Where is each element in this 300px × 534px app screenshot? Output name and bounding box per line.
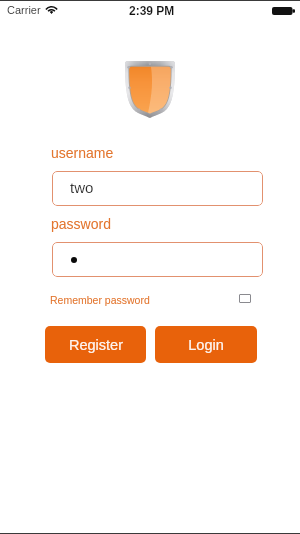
button[interactable]: Remember password checkbox xyxy=(239,294,251,303)
button[interactable]: Register xyxy=(45,326,146,363)
staticText: Carrier xyxy=(7,4,41,16)
staticText: Register xyxy=(69,337,123,353)
staticText: two xyxy=(70,179,94,196)
button[interactable] xyxy=(52,242,263,277)
staticText: username xyxy=(51,145,114,161)
button[interactable]: Remember password xyxy=(50,294,150,306)
button[interactable]: two xyxy=(52,171,263,206)
button[interactable]: Login xyxy=(155,326,257,363)
staticText: Login xyxy=(188,337,224,353)
staticText: 2:39 PM xyxy=(129,4,175,17)
staticText: password xyxy=(51,216,111,232)
